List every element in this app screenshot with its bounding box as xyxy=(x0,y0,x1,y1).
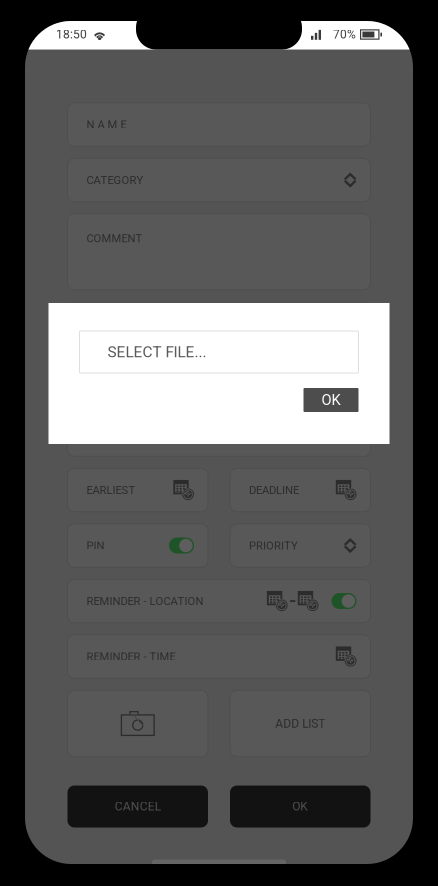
button[interactable]: Take photo xyxy=(67,690,208,757)
staticText: REMINDER - TIME xyxy=(86,650,175,663)
staticText: OK xyxy=(321,391,340,409)
button[interactable]: STATUS xyxy=(67,357,370,401)
staticText: SELECT FILE... xyxy=(107,343,206,361)
button[interactable]: ADD LIST xyxy=(230,690,370,757)
staticText: CATEGORY xyxy=(86,173,143,187)
button[interactable]: OK xyxy=(303,388,358,412)
button[interactable]: DEADLINE xyxy=(230,468,370,512)
button[interactable]: SELECT FILE... xyxy=(79,331,358,373)
button[interactable]: PIN xyxy=(67,524,208,567)
staticText: 18:50 xyxy=(56,27,87,42)
button[interactable]: CATEGORY xyxy=(67,158,370,202)
staticText: 70% xyxy=(333,27,356,42)
staticText: EARLIEST xyxy=(86,483,135,497)
button[interactable]: PRIORITY xyxy=(230,524,370,567)
staticText: PIN xyxy=(86,539,104,552)
staticText: REMINDER - LOCATION xyxy=(86,594,203,608)
staticText: PRIORITY xyxy=(249,539,298,552)
button[interactable]: REMINDER - TIME xyxy=(67,635,370,678)
button[interactable]: PLACE xyxy=(67,302,370,345)
button[interactable]: REMINDER - LOCATION xyxy=(67,579,370,623)
staticText: CANCEL xyxy=(115,799,161,814)
button[interactable]: CANCEL xyxy=(67,785,208,827)
staticText: DEADLINE xyxy=(249,483,299,497)
staticText: STATUS xyxy=(86,372,127,386)
button[interactable]: EARLIEST xyxy=(67,468,208,512)
staticText: ADD LIST xyxy=(275,716,325,731)
staticText: OK xyxy=(292,799,308,814)
staticText: COMMENT xyxy=(86,232,142,245)
button[interactable]: LOCATION xyxy=(67,413,370,456)
button[interactable]: OK xyxy=(230,785,370,827)
staticText: N A M E xyxy=(86,118,126,131)
